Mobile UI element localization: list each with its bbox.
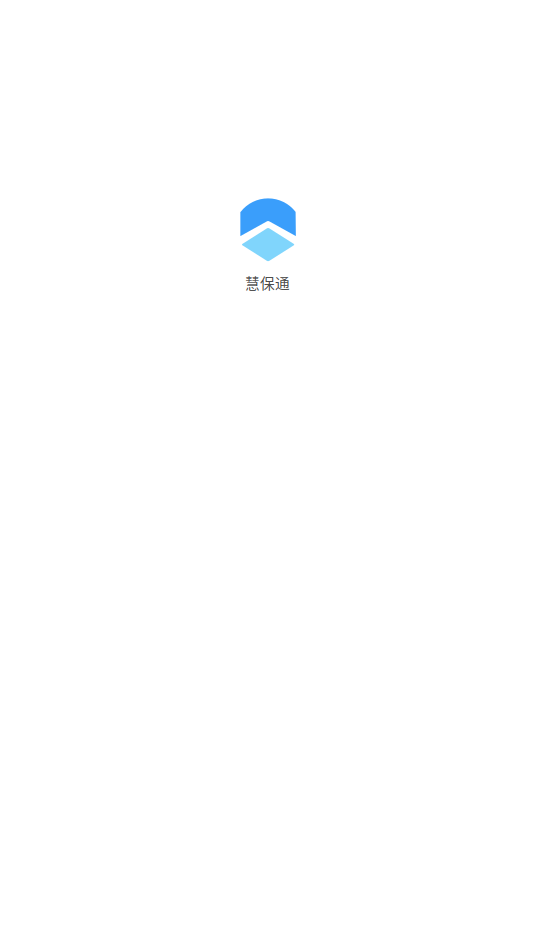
staticText: 慧保通 bbox=[245, 272, 290, 293]
